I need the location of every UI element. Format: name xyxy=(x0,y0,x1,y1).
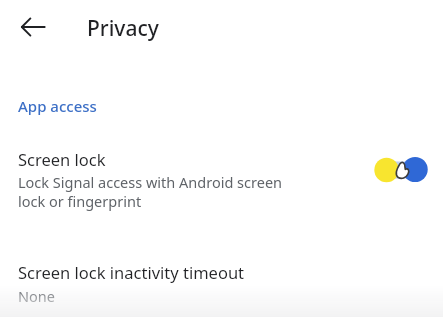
staticText: App access xyxy=(18,96,97,116)
button[interactable]: Screen lock, on xyxy=(371,153,431,187)
button[interactable]: Navigate up xyxy=(9,3,57,51)
button[interactable]: Screen lock inactivity timeout xyxy=(0,261,443,306)
button[interactable]: Screen lock xyxy=(0,148,443,211)
staticText: Screen lock xyxy=(18,148,106,170)
staticText: Lock Signal access with Android screen l… xyxy=(18,172,283,211)
staticText: None xyxy=(18,286,55,306)
staticText: Screen lock inactivity timeout xyxy=(18,261,245,283)
staticText: Privacy xyxy=(87,14,159,43)
